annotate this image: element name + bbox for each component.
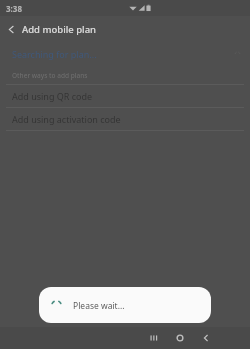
button[interactable]: Recent apps [141, 327, 167, 349]
staticText: 3:38 [6, 3, 22, 14]
button[interactable]: Home [167, 327, 193, 349]
staticText: Add using QR code [12, 90, 93, 102]
button[interactable]: Navigate up [0, 16, 22, 42]
staticText: Add using activation code [12, 113, 121, 125]
button[interactable]: Searching for plan... [0, 42, 250, 66]
staticText: Searching for plan... [12, 48, 97, 60]
button[interactable]: Add using activation code [0, 108, 250, 130]
staticText: Add mobile plan [22, 23, 97, 36]
button[interactable]: Back [193, 327, 219, 349]
staticText: Please wait... [73, 300, 125, 312]
staticText: Other ways to add plans [12, 71, 88, 80]
button[interactable]: Add using QR code [0, 85, 250, 107]
